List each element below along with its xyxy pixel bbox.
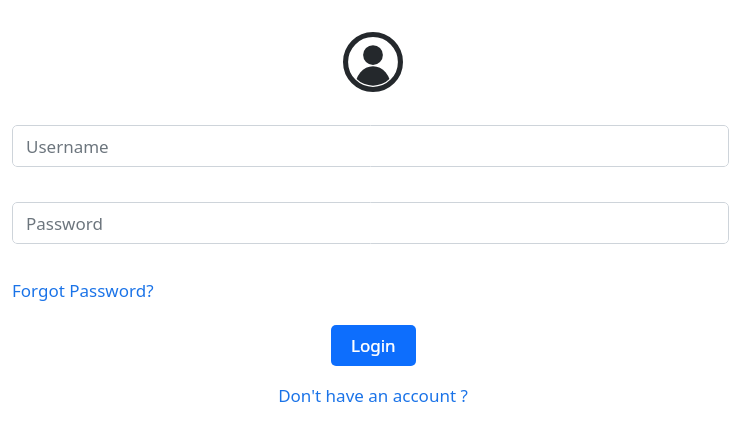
button[interactable]: Username	[12, 125, 729, 167]
staticText: Don't have an account ?	[278, 384, 468, 407]
button[interactable]: Don't have an account ?	[278, 384, 468, 407]
button[interactable]: Login	[331, 325, 416, 366]
other: Account avatar	[343, 32, 403, 92]
button[interactable]: Forgot Password?	[12, 279, 154, 302]
staticText: Password	[26, 212, 103, 235]
staticText: Forgot Password?	[12, 279, 154, 302]
staticText: Username	[26, 135, 109, 158]
staticText: Login	[351, 334, 396, 357]
button[interactable]: Password	[12, 202, 729, 244]
